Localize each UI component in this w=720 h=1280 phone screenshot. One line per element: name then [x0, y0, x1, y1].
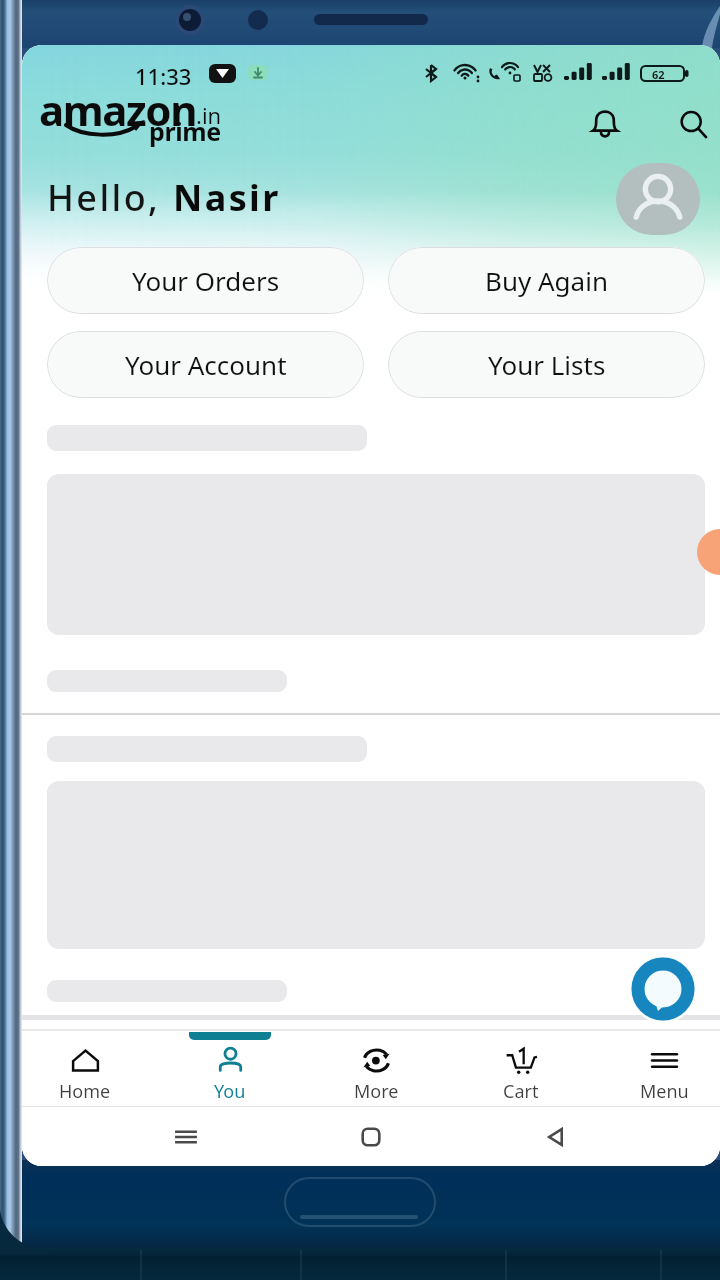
staticText: You — [214, 1079, 246, 1104]
button[interactable]: Chat with us — [629, 955, 697, 1023]
staticText: 62 — [652, 67, 665, 82]
button[interactable]: Buy Again — [388, 247, 705, 314]
button[interactable]: Back — [535, 1116, 577, 1158]
staticText: Hello, — [47, 173, 173, 222]
staticText: Your Lists — [488, 347, 606, 382]
staticText: Cart — [503, 1079, 539, 1104]
button[interactable]: Your Lists — [388, 331, 705, 398]
button[interactable]: Notifications — [576, 93, 634, 151]
button[interactable]: Menu — [599, 1032, 720, 1107]
staticText: Home — [59, 1079, 111, 1104]
button[interactable]: Your account — [616, 163, 700, 235]
staticText: Your Account — [125, 347, 287, 382]
staticText: .in — [196, 100, 222, 130]
button[interactable]: Recents — [165, 1116, 207, 1158]
button[interactable]: Home — [350, 1116, 392, 1158]
button[interactable]: Home — [22, 1032, 150, 1107]
button[interactable]: Cart — [456, 1032, 586, 1107]
staticText: Your Orders — [132, 263, 280, 298]
staticText: prime — [149, 114, 221, 148]
button[interactable]: You — [165, 1032, 295, 1107]
staticText: amazon — [39, 81, 197, 127]
button[interactable]: More — [311, 1032, 441, 1107]
staticText: Menu — [640, 1079, 689, 1104]
button[interactable]: Your Account — [47, 331, 364, 398]
button[interactable]: Your Orders — [47, 247, 364, 314]
staticText: Buy Again — [485, 263, 608, 298]
button[interactable]: Search — [664, 95, 720, 153]
staticText: Nasir — [173, 173, 281, 222]
staticText: More — [354, 1079, 399, 1104]
staticText: 11:33 — [135, 61, 192, 91]
